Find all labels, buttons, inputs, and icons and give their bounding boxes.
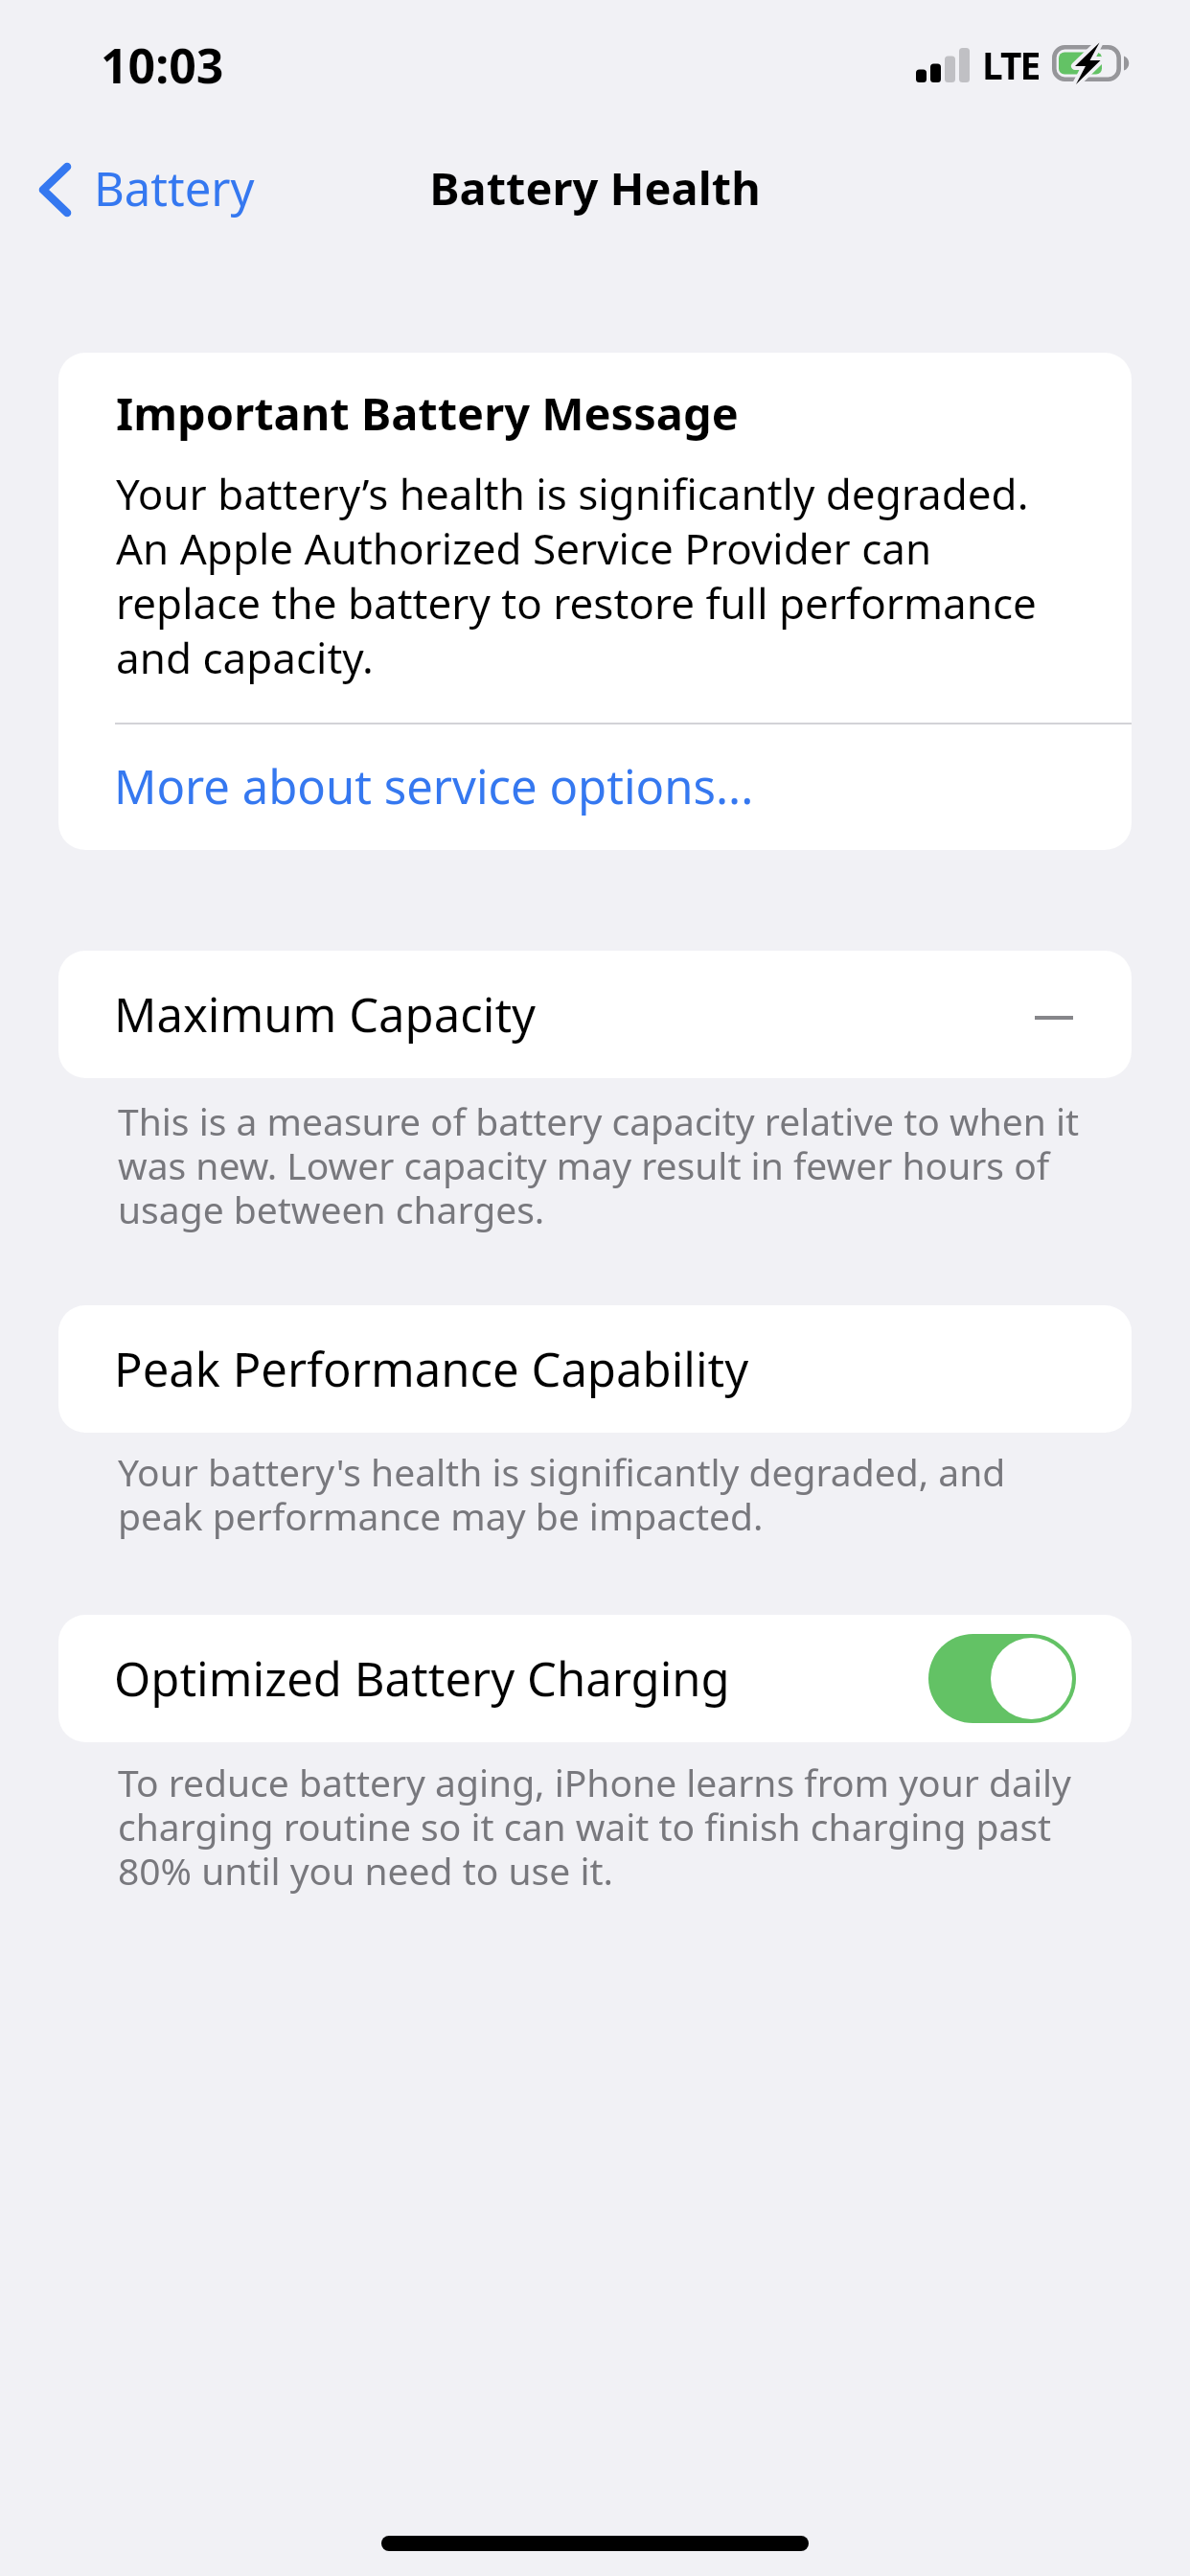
staticText: Battery: [94, 156, 255, 220]
staticText: To reduce battery aging, iPhone learns f…: [118, 1757, 1086, 1897]
staticText: Your battery’s health is significantly d…: [116, 465, 1041, 686]
staticText: Important Battery Message: [116, 382, 739, 444]
button[interactable]: Optimized Battery Charging toggle: [928, 1634, 1076, 1723]
button[interactable]: Maximum Capacity: [58, 951, 1132, 1078]
staticText: Your battery's health is significantly d…: [118, 1446, 1018, 1542]
staticText: Peak Performance Capability: [114, 1337, 749, 1401]
button[interactable]: Optimized Battery Charging: [58, 1615, 1132, 1742]
button[interactable]: Back: [19, 144, 278, 236]
staticText: More about service options...: [114, 754, 754, 818]
staticText: LTE: [982, 39, 1040, 90]
staticText: Battery Health: [0, 157, 1190, 218]
button[interactable]: Peak Performance Capability: [58, 1305, 1132, 1433]
button[interactable]: More about service options...: [58, 724, 1132, 850]
staticText: Maximum Capacity: [114, 982, 537, 1046]
staticText: Optimized Battery Charging: [114, 1646, 730, 1711]
staticText: This is a measure of battery capacity re…: [118, 1095, 1086, 1235]
staticText: 10:03: [101, 33, 224, 98]
other: Back: [38, 162, 72, 218]
